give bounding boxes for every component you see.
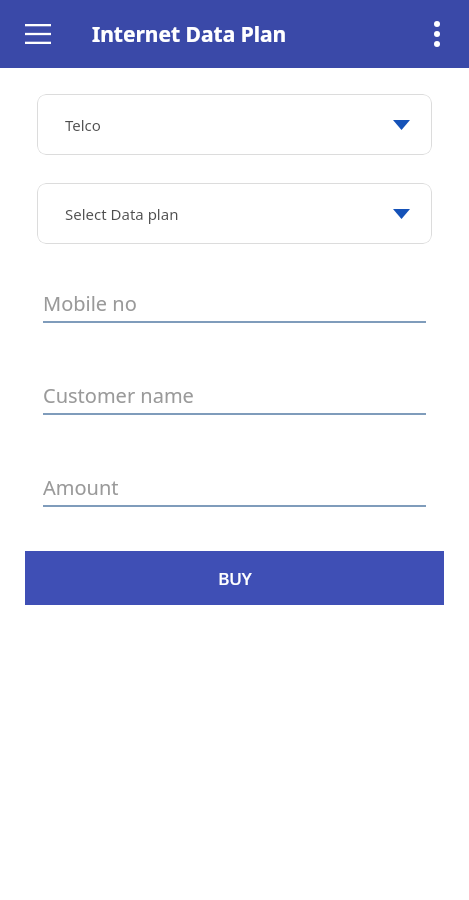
staticText: Mobile no (43, 290, 137, 317)
button[interactable]: Customer name (43, 382, 426, 415)
button[interactable]: Telco (37, 94, 432, 155)
button[interactable]: BUY (25, 551, 444, 605)
staticText: Telco (65, 115, 101, 135)
button[interactable]: Amount (43, 474, 426, 507)
staticText: Amount (43, 474, 119, 501)
button[interactable]: More options (413, 10, 461, 58)
button[interactable]: Select Data plan (37, 183, 432, 244)
button[interactable]: Open navigation menu (14, 10, 62, 58)
button[interactable]: Mobile no (43, 290, 426, 323)
staticText: Customer name (43, 382, 194, 409)
staticText: BUY (218, 567, 252, 590)
staticText: Select Data plan (65, 204, 179, 224)
staticText: Internet Data Plan (92, 20, 287, 49)
